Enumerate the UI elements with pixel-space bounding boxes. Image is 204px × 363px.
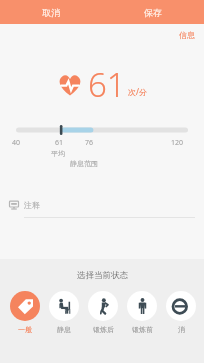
staticText: 61 [88,62,126,107]
button[interactable]: 静息 [49,291,79,334]
staticText: 保存 [144,7,162,18]
button[interactable]: 消 [166,291,196,334]
button[interactable]: 锻炼后 [88,291,118,334]
staticText: 静息范围 [70,159,98,168]
staticText: 40 [12,138,21,148]
staticText: 信息 [179,30,195,40]
staticText: 静息 [57,325,71,334]
staticText: 一般 [18,325,32,334]
staticText: 120 [171,138,184,148]
staticText: 平均 [51,149,65,158]
button[interactable]: 信息 [179,30,195,40]
staticText: 61 [55,138,64,148]
staticText: 消 [178,325,185,334]
staticText: 注释 [24,200,40,210]
button[interactable]: 保存 [102,0,204,24]
button[interactable]: 注释 [9,195,195,215]
staticText: 次/分 [128,86,147,97]
button[interactable]: 锻炼前 [127,291,157,334]
staticText: 选择当前状态 [77,270,128,281]
button[interactable]: 一般 [10,291,40,334]
staticText: 锻炼前 [132,325,153,334]
staticText: 取消 [42,7,60,18]
staticText: 锻炼后 [93,325,114,334]
staticText: 76 [85,138,94,148]
button[interactable]: 取消 [0,0,102,24]
